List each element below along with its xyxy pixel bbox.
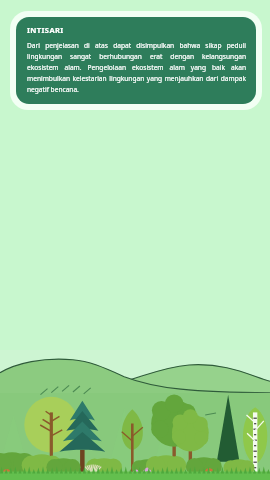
button[interactable]: INTISARI: [16, 17, 256, 104]
staticText: Dari penjelasan di atas dapat disimpulka…: [27, 41, 246, 94]
staticText: INTISARI: [27, 25, 64, 35]
